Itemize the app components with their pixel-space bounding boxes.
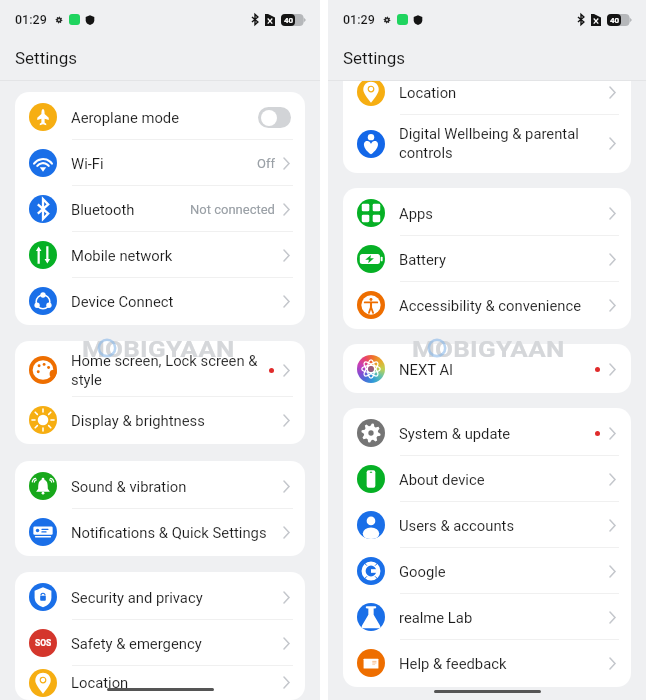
button[interactable]: Home screen, Lock screen & style	[15, 343, 305, 397]
button[interactable]: System & update	[343, 410, 631, 456]
staticText: Safety & emergency	[71, 635, 282, 652]
button[interactable]: Security and privacy	[15, 574, 305, 620]
button[interactable]: Location	[343, 69, 631, 115]
button[interactable]: Device Connect	[15, 278, 305, 324]
button[interactable]: Users & accounts	[343, 502, 631, 548]
staticText: Security and privacy	[71, 589, 282, 606]
button[interactable]: Bluetooth	[15, 186, 305, 232]
staticText: Digital Wellbeing & parental controls	[399, 125, 608, 162]
button[interactable]: Accessibility & convenience	[343, 282, 631, 328]
button[interactable]: Help & feedback	[343, 640, 631, 686]
staticText: NEXT AI	[399, 361, 595, 378]
staticText: Not connected	[190, 202, 275, 217]
staticText: Settings	[343, 48, 406, 68]
staticText: Location	[399, 84, 608, 101]
button[interactable]: SOS	[15, 620, 305, 666]
staticText: Notifications & Quick Settings	[71, 524, 282, 541]
staticText: 01:29	[343, 12, 375, 27]
staticText: Mobile network	[71, 247, 282, 264]
staticText: Device Connect	[71, 293, 282, 310]
staticText: Bluetooth	[71, 201, 190, 218]
button[interactable]: Apps	[343, 190, 631, 236]
staticText: MOBIGYAAN	[412, 336, 565, 359]
staticText: SOS	[35, 638, 52, 648]
staticText: 40	[610, 16, 620, 25]
staticText: 01:29	[15, 12, 47, 27]
button[interactable]: Google	[343, 548, 631, 594]
staticText: Help & feedback	[399, 655, 608, 672]
button[interactable]: Sound & vibration	[15, 463, 305, 509]
button[interactable]: Battery	[343, 236, 631, 282]
button[interactable]: realme Lab	[343, 594, 631, 640]
staticText: 40	[284, 16, 294, 25]
staticText: Off	[257, 156, 275, 171]
staticText: Wi-Fi	[71, 155, 257, 172]
button[interactable]: Location	[15, 666, 305, 699]
staticText: Location	[71, 674, 282, 691]
button[interactable]: Display & brightness	[15, 397, 305, 443]
staticText: System & update	[399, 425, 595, 442]
staticText: MOBIGYAAN	[82, 336, 235, 359]
button[interactable]: NEXT AI	[343, 346, 631, 392]
staticText: Users & accounts	[399, 517, 608, 534]
staticText: realme Lab	[399, 609, 608, 626]
button[interactable]: About device	[343, 456, 631, 502]
button[interactable]: Digital Wellbeing & parental controls	[343, 115, 631, 172]
button[interactable]: Aeroplane mode	[15, 94, 305, 140]
staticText: Display & brightness	[71, 412, 282, 429]
staticText: Aeroplane mode	[71, 109, 258, 126]
staticText: Google	[399, 563, 608, 580]
staticText: Accessibility & convenience	[399, 297, 608, 314]
staticText: About device	[399, 471, 608, 488]
button[interactable]: Notifications & Quick Settings	[15, 509, 305, 555]
staticText: Sound & vibration	[71, 478, 282, 495]
staticText: Battery	[399, 251, 608, 268]
staticText: Apps	[399, 205, 608, 222]
button[interactable]: Wi-Fi	[15, 140, 305, 186]
staticText: Settings	[15, 48, 78, 68]
staticText: Home screen, Lock screen & style	[71, 352, 269, 389]
button[interactable]: Mobile network	[15, 232, 305, 278]
